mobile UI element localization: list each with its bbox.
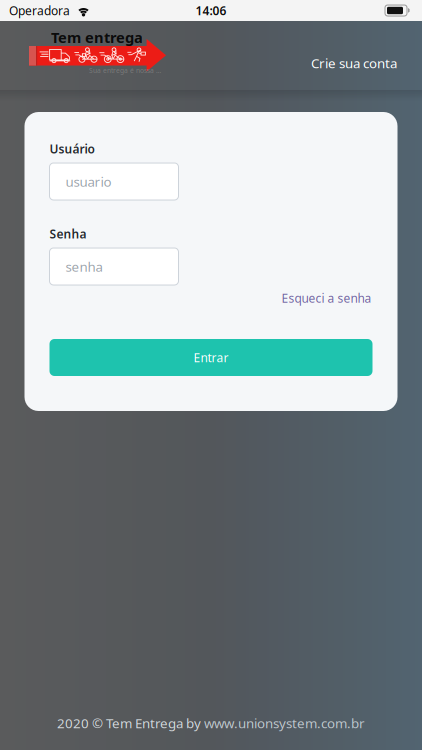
staticText: usuario [65, 173, 111, 190]
staticText: 14:06 [195, 2, 226, 18]
button[interactable]: usuario [49, 163, 178, 200]
staticText: Sua entrega é nossa missão [89, 66, 161, 75]
staticText: www.unionsystem.com.br [204, 714, 365, 732]
staticText: Entrar [193, 349, 228, 365]
staticText: senha [65, 258, 102, 275]
staticText: 2020 © Tem Entrega by [57, 714, 204, 732]
staticText: Operadora [9, 2, 70, 18]
staticText: Tem entrega [51, 27, 143, 47]
staticText: Esqueci a senha [281, 290, 371, 306]
button[interactable]: senha [49, 248, 178, 285]
button[interactable]: www.unionsystem.com.br [204, 714, 365, 732]
staticText: Senha [49, 226, 86, 242]
button[interactable]: Esqueci a senha [281, 290, 372, 306]
staticText: Usuário [49, 141, 94, 157]
button[interactable]: Crie sua conta [299, 43, 409, 83]
button[interactable]: Entrar [49, 339, 372, 376]
staticText: Crie sua conta [311, 54, 397, 72]
